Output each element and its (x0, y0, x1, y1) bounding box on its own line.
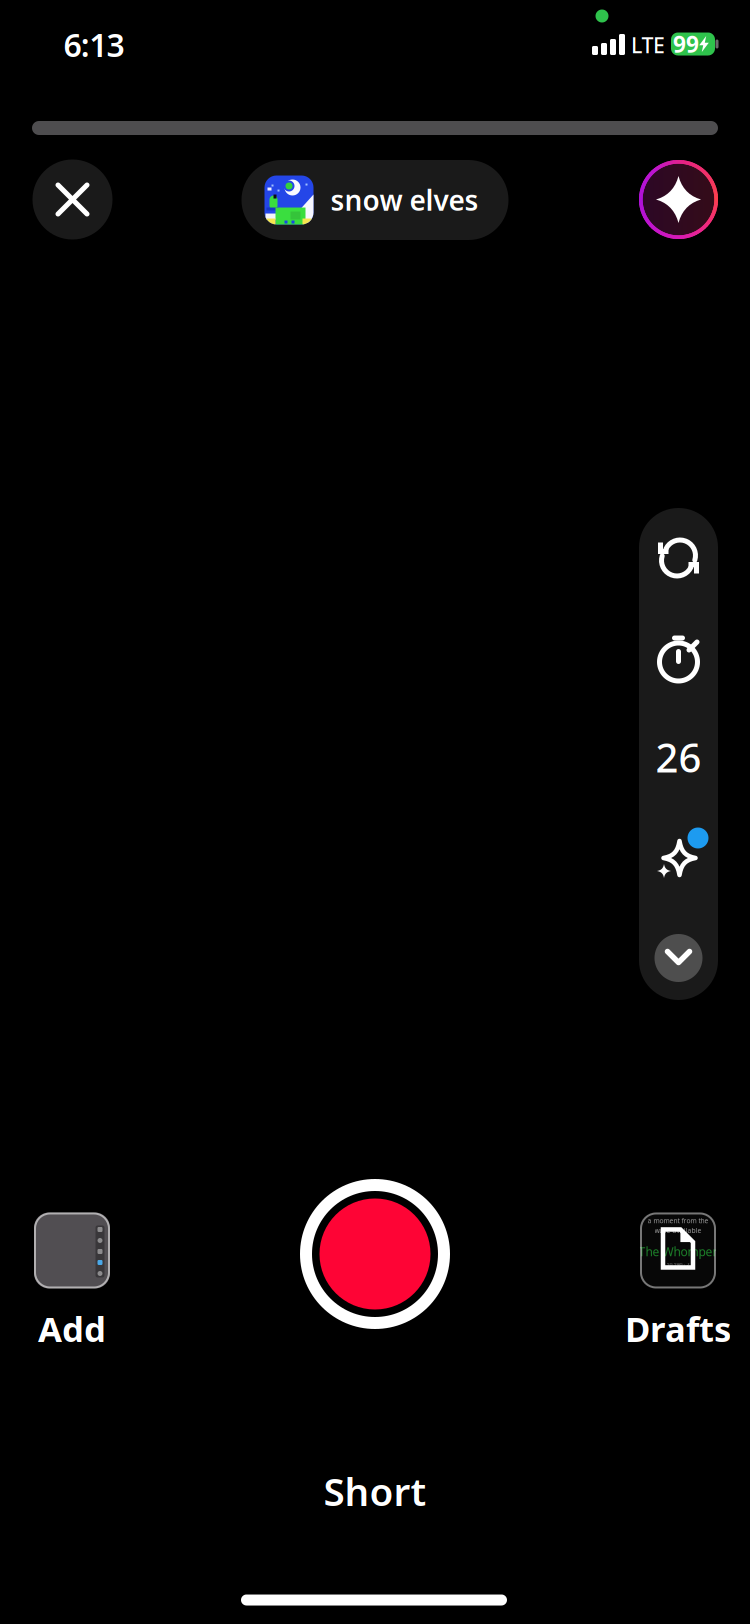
staticText: 99 (673, 29, 699, 59)
button[interactable]: More options (639, 928, 718, 988)
staticText: wave available (654, 1226, 701, 1235)
button[interactable]: Timer (639, 611, 718, 711)
staticText: 6:13 (64, 23, 124, 66)
button[interactable]: Close (32, 159, 112, 239)
staticText: The Whomper (638, 1243, 717, 1259)
staticText: 10 190 - 2 (666, 1261, 689, 1268)
staticText: Drafts (625, 1305, 731, 1351)
button[interactable]: Add (0, 1212, 152, 1351)
button[interactable]: a moment from the (598, 1212, 750, 1351)
button[interactable]: AI effects (639, 160, 718, 239)
staticText: Short (323, 1465, 426, 1517)
staticText: Add (38, 1305, 106, 1351)
staticText: a moment from the (647, 1216, 708, 1225)
staticText: LTE (631, 31, 665, 59)
button[interactable]: Record (297, 1176, 453, 1332)
staticText: 26 (655, 730, 701, 783)
button[interactable]: 26 (639, 709, 718, 805)
button[interactable]: snow elves (241, 160, 508, 240)
staticText: snow elves (330, 181, 478, 219)
button[interactable]: Flip camera (639, 508, 718, 608)
button[interactable]: Short (295, 1461, 455, 1521)
button[interactable]: Effects (639, 807, 718, 907)
